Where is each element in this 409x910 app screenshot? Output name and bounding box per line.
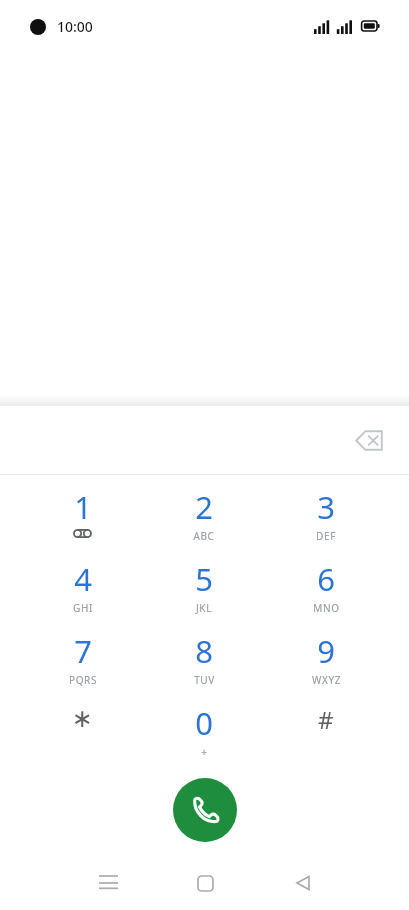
button[interactable]: Call — [173, 778, 237, 842]
staticText: 0 — [195, 702, 213, 744]
button[interactable]: ∗ — [22, 698, 143, 770]
button[interactable]: Home — [185, 863, 225, 903]
staticText: JKL — [196, 601, 212, 615]
button[interactable]: 5 — [143, 554, 265, 626]
staticText: 5 — [195, 558, 213, 600]
button[interactable]: 0 — [143, 698, 265, 770]
button[interactable]: 2 — [143, 482, 265, 554]
staticText: 3 — [317, 486, 335, 528]
button[interactable]: Backspace — [343, 414, 395, 466]
button[interactable]: 7 — [22, 626, 143, 698]
staticText: MNO — [313, 601, 340, 615]
staticText: ABC — [193, 529, 215, 543]
button[interactable]: 4 — [22, 554, 143, 626]
button[interactable]: 9 — [265, 626, 387, 698]
staticText: ∗ — [72, 704, 93, 733]
staticText: 7 — [74, 630, 92, 672]
button[interactable]: 8 — [143, 626, 265, 698]
button[interactable]: 1 — [22, 482, 143, 554]
staticText: 6 — [317, 558, 335, 600]
staticText: GHI — [73, 601, 93, 615]
button[interactable]: Back — [283, 863, 323, 903]
staticText: PQRS — [69, 673, 97, 687]
staticText: # — [318, 703, 334, 736]
staticText: 8 — [195, 630, 213, 672]
staticText: WXYZ — [312, 673, 341, 687]
button[interactable]: # — [265, 698, 387, 770]
button[interactable]: 6 — [265, 554, 387, 626]
staticText: + — [201, 745, 208, 759]
staticText: DEF — [316, 529, 336, 543]
staticText: 10:00 — [57, 17, 93, 36]
staticText: 2 — [195, 486, 213, 528]
button[interactable]: Recents — [88, 863, 128, 903]
button[interactable]: 3 — [265, 482, 387, 554]
staticText: 9 — [317, 630, 335, 672]
staticText: 1 — [74, 486, 92, 528]
staticText: 4 — [74, 558, 92, 600]
staticText: TUV — [194, 673, 215, 687]
